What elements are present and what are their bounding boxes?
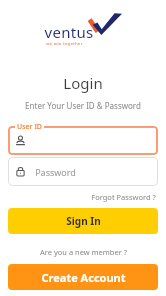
staticText: we win together: [46, 41, 83, 46]
button[interactable]: Password: [8, 157, 158, 186]
button[interactable]: Sign In: [8, 208, 158, 234]
staticText: ventus: [44, 22, 94, 42]
staticText: Enter Your User ID & Password: [25, 100, 141, 111]
other: User: [15, 135, 26, 146]
staticText: User ID: [17, 122, 42, 132]
staticText: Password: [35, 166, 76, 178]
staticText: Create Account: [41, 270, 126, 285]
other: Password: [15, 166, 26, 177]
button[interactable]: Create Account: [8, 264, 158, 290]
staticText: Forgot Password ?: [91, 192, 156, 202]
staticText: Are you a new member ?: [40, 247, 127, 257]
staticText: Login: [63, 73, 103, 93]
button[interactable]: User: [8, 126, 158, 155]
button[interactable]: Forgot Password ?: [89, 191, 158, 203]
staticText: Sign In: [66, 214, 101, 228]
